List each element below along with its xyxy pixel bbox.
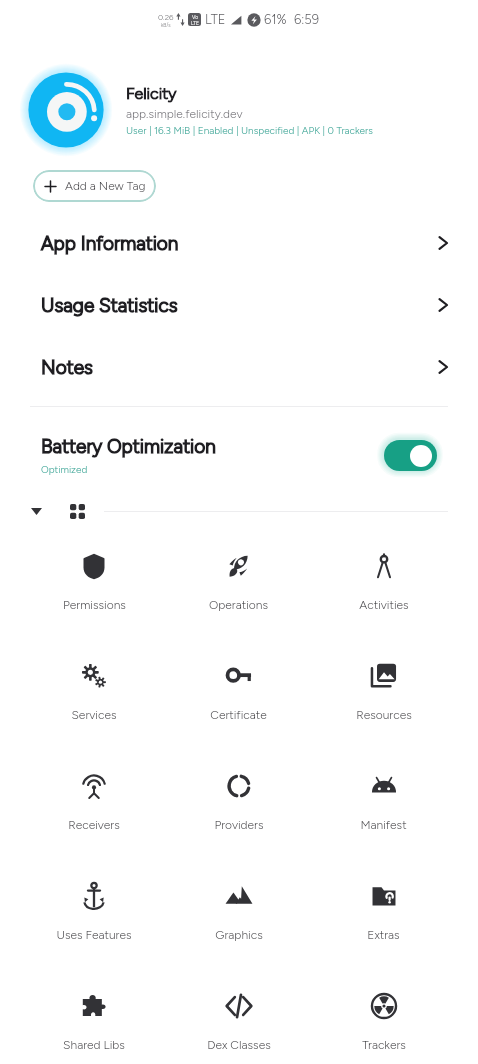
button[interactable]: Notes <box>0 336 478 398</box>
staticText: LTE <box>191 20 199 26</box>
button[interactable]: Battery optimization toggle <box>384 440 437 471</box>
button[interactable]: Dex Classes <box>166 976 311 1052</box>
button[interactable]: Operations <box>166 536 311 612</box>
staticText: Graphics <box>215 928 263 942</box>
staticText: 61% <box>264 12 287 28</box>
staticText: Notes <box>41 356 93 379</box>
button[interactable]: Graphics <box>166 866 311 942</box>
button[interactable]: Uses Features <box>22 866 166 942</box>
button[interactable]: App Information <box>0 212 478 274</box>
staticText: Receivers <box>68 818 120 832</box>
button[interactable]: Grid layout <box>66 500 88 522</box>
staticText: Uses Features <box>56 928 132 942</box>
staticText: Battery Optimization <box>41 435 216 458</box>
button[interactable]: Battery Optimization <box>0 424 478 486</box>
staticText: App Information <box>41 232 179 255</box>
button[interactable]: Activities <box>311 536 456 612</box>
button[interactable]: Collapse section <box>26 501 46 521</box>
button[interactable]: Usage Statistics <box>0 274 478 336</box>
staticText: Notes <box>41 356 93 379</box>
button[interactable]: Shared Libs <box>22 976 166 1052</box>
staticText: Operations <box>209 598 268 612</box>
staticText: kB/s <box>161 22 171 28</box>
staticText: LTE <box>205 12 226 28</box>
staticText: Usage Statistics <box>41 294 178 317</box>
staticText: Add a New Tag <box>65 179 146 193</box>
button[interactable]: Add a New Tag <box>33 170 156 202</box>
button[interactable]: Trackers <box>311 976 456 1052</box>
staticText: 0.26 <box>158 12 174 22</box>
button[interactable]: Services <box>22 646 166 722</box>
staticText: Shared Libs <box>63 1038 125 1052</box>
staticText: User | 16.3 MiB | Enabled | Unspecified … <box>126 124 373 136</box>
staticText: Providers <box>214 818 264 832</box>
staticText: App Information <box>41 232 179 255</box>
staticText: Dex Classes <box>207 1038 271 1052</box>
staticText: Activities <box>359 598 409 612</box>
button[interactable]: Receivers <box>22 756 166 832</box>
staticText: Permissions <box>63 598 126 612</box>
staticText: Manifest <box>360 818 407 832</box>
button[interactable]: Permissions <box>22 536 166 612</box>
staticText: Services <box>71 708 117 722</box>
staticText: 6:59 <box>294 12 320 28</box>
staticText: Felicity <box>126 84 177 103</box>
staticText: Resources <box>356 708 412 722</box>
button[interactable]: Manifest <box>311 756 456 832</box>
staticText: Extras <box>367 928 400 942</box>
staticText: Battery Optimization <box>41 435 216 458</box>
button[interactable]: Certificate <box>166 646 311 722</box>
staticText: app.simple.felicity.dev <box>126 107 243 121</box>
staticText: Vo <box>192 14 199 20</box>
staticText: Optimized <box>41 463 88 475</box>
button[interactable]: Resources <box>311 646 456 722</box>
staticText: Felicity <box>126 84 177 103</box>
staticText: Trackers <box>362 1038 406 1052</box>
staticText: Usage Statistics <box>41 294 178 317</box>
button[interactable]: Extras <box>311 866 456 942</box>
button[interactable]: Providers <box>166 756 311 832</box>
staticText: Certificate <box>210 708 267 722</box>
